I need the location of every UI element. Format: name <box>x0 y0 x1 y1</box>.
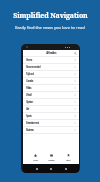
button[interactable]: Home <box>32 154 39 161</box>
button[interactable]: Sports <box>23 113 79 119</box>
staticText: Opinion <box>26 100 33 104</box>
staticText: Sports <box>26 114 32 118</box>
button[interactable]: Headlines <box>47 154 56 161</box>
button[interactable]: Politics <box>23 85 79 91</box>
staticText: Headlines <box>48 158 55 161</box>
other: Search <box>74 52 77 55</box>
staticText: Home <box>33 158 38 161</box>
button[interactable]: MyLocal <box>23 71 79 77</box>
button[interactable]: Home <box>23 57 79 63</box>
button[interactable]: Life <box>23 106 79 112</box>
staticText: Canada <box>26 79 33 83</box>
staticText: World <box>26 93 32 97</box>
staticText: MyLocal <box>26 72 34 76</box>
button[interactable]: Business <box>23 127 79 133</box>
staticText: Home <box>26 58 32 62</box>
staticText: Business <box>26 128 34 132</box>
button[interactable]: World <box>23 92 79 98</box>
staticText: Simplified Navigation <box>13 11 88 21</box>
staticText: Recommended <box>26 65 41 69</box>
button[interactable]: Recommended <box>23 64 79 70</box>
button[interactable]: Saved <box>65 154 71 161</box>
staticText: Life <box>26 107 29 111</box>
staticText: Entertainment <box>26 121 39 125</box>
staticText: Politics <box>26 86 32 90</box>
button[interactable]: Canada <box>23 78 79 84</box>
staticText: Saved <box>66 158 70 161</box>
button[interactable]: Opinion <box>23 99 79 105</box>
staticText: All Headlines <box>46 51 57 55</box>
staticText: Easily find the news you love to read <box>15 25 85 31</box>
button[interactable]: Entertainment <box>23 120 79 126</box>
